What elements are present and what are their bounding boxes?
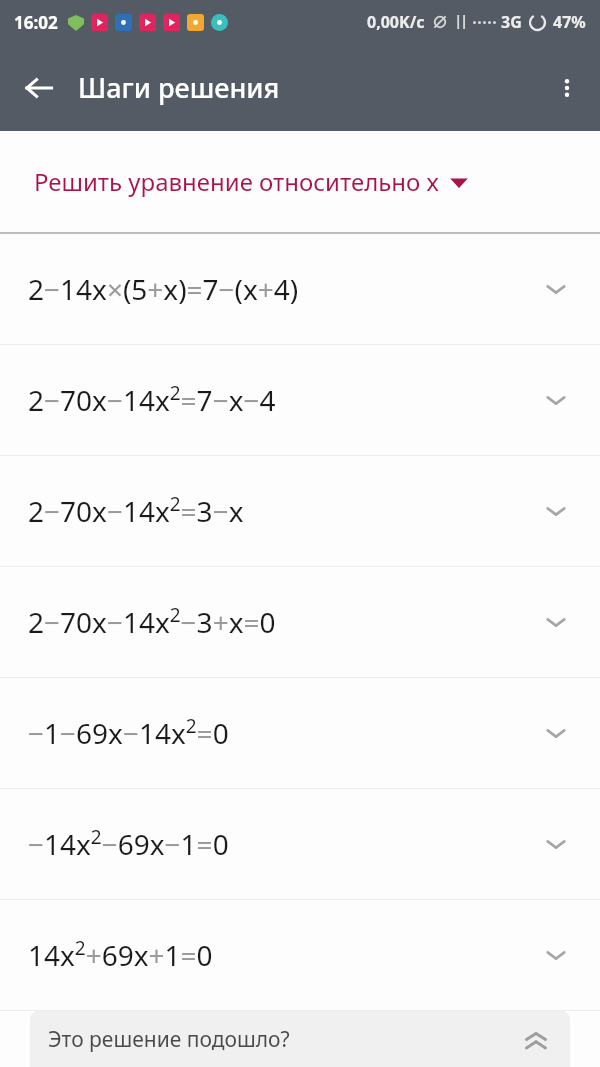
button[interactable]: Back <box>0 44 78 131</box>
other: Expand step <box>534 267 578 311</box>
other: Expand step <box>534 711 578 755</box>
button[interactable]: −14x2−69x−1=0 <box>0 789 600 899</box>
button[interactable]: 2−70x−14x2=7−x−4 <box>0 345 600 455</box>
button[interactable]: 2−70x−14x2=3−x <box>0 456 600 566</box>
button[interactable]: −1−69x−14x2=0 <box>0 678 600 788</box>
button[interactable]: Это решение подошло? <box>30 1011 570 1067</box>
staticText: 16:02 <box>14 11 58 34</box>
staticText: Решить уравнение относительно х <box>34 165 439 198</box>
button[interactable]: Решить уравнение относительно х <box>0 131 600 232</box>
other: Expand step <box>534 600 578 644</box>
button[interactable]: 2−70x−14x2−3+x=0 <box>0 567 600 677</box>
button[interactable]: 14x2+69x+1=0 <box>0 900 600 1010</box>
staticText: −1−69x−14x2=0 <box>28 713 534 753</box>
staticText: 14x2+69x+1=0 <box>28 935 534 975</box>
staticText: 0,00K/c <box>367 11 425 33</box>
other: Expand feedback <box>518 1021 554 1057</box>
staticText: 2−70x−14x2=7−x−4 <box>28 380 534 420</box>
staticText: Это решение подошло? <box>48 1025 290 1054</box>
other: Expand step <box>534 933 578 977</box>
staticText: 2−70x−14x2=3−x <box>28 491 534 531</box>
staticText: −14x2−69x−1=0 <box>28 824 534 864</box>
other: Expand step <box>534 489 578 533</box>
other: Expand step <box>534 822 578 866</box>
staticText: 2−70x−14x2−3+x=0 <box>28 602 534 642</box>
staticText: Шаги решения <box>78 69 280 106</box>
staticText: 47% <box>553 11 586 33</box>
button[interactable]: 2−14x×(5+x)=7−(x+4) <box>0 234 600 344</box>
button[interactable]: More options <box>534 44 600 131</box>
staticText: 2−14x×(5+x)=7−(x+4) <box>28 270 534 308</box>
other: Expand step <box>534 378 578 422</box>
staticText: 3G <box>501 11 522 33</box>
